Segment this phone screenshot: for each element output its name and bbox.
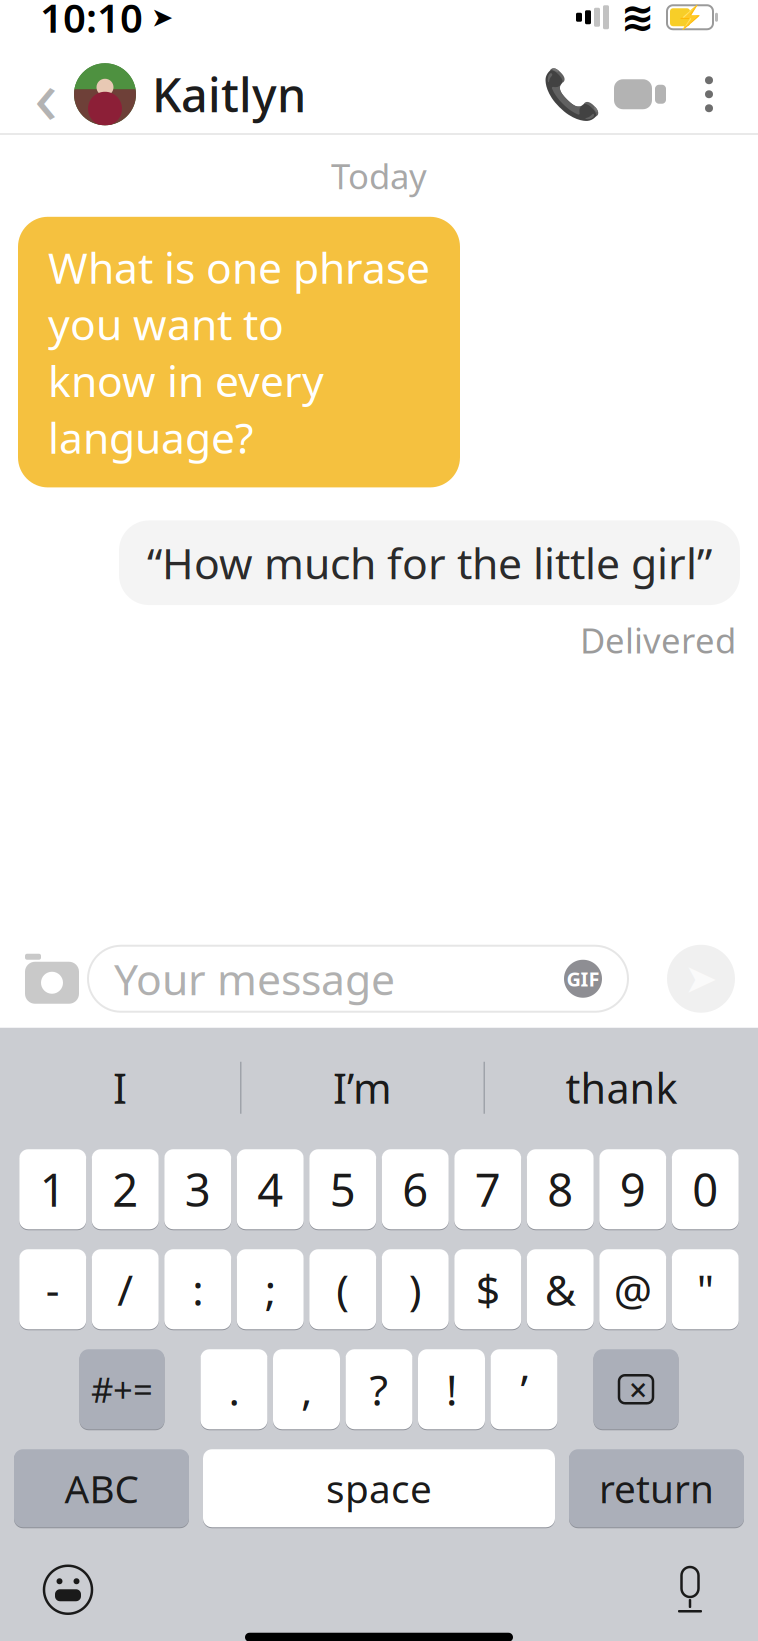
button[interactable]: , (273, 1348, 340, 1431)
staticText: 4 (257, 1159, 283, 1219)
staticText: ‹ (34, 43, 58, 146)
button[interactable]: 3 (164, 1148, 231, 1231)
staticText: What is one phrase you want to know in e… (48, 239, 430, 465)
button[interactable]: ? (345, 1348, 412, 1431)
button[interactable]: Dictation (650, 1555, 730, 1625)
button[interactable]: 4 (237, 1148, 304, 1231)
staticText: 📞 (542, 67, 602, 122)
staticText: × (629, 1368, 647, 1410)
staticText: ➤ (684, 956, 718, 1001)
button[interactable]: : (164, 1248, 231, 1331)
button[interactable]: Emoji (28, 1555, 108, 1625)
staticText: : (192, 1261, 203, 1318)
staticText: 3 (185, 1159, 211, 1219)
button[interactable]: #+= (79, 1348, 164, 1431)
staticText: thank (565, 1060, 677, 1115)
button[interactable]: space (203, 1448, 555, 1529)
staticText: Kaitlyn (152, 63, 306, 125)
staticText: return (599, 1463, 714, 1514)
button[interactable]: ( (309, 1248, 376, 1331)
staticText: " (697, 1261, 714, 1318)
button[interactable]: ! (418, 1348, 485, 1431)
button[interactable]: 0 (672, 1148, 739, 1231)
staticText: space (326, 1463, 432, 1514)
staticText: 2 (112, 1159, 138, 1219)
button[interactable]: 7 (454, 1148, 521, 1231)
staticText: ⚡ (676, 4, 704, 30)
button[interactable]: 5 (309, 1148, 376, 1231)
button[interactable]: ) (382, 1248, 449, 1331)
staticText: ≋ (621, 0, 655, 40)
staticText: ? (369, 1361, 388, 1418)
staticText: - (46, 1261, 60, 1318)
button[interactable]: thank (485, 1050, 758, 1126)
button[interactable]: Voice call (542, 62, 602, 126)
button[interactable]: Camera (16, 947, 88, 1011)
staticText: / (117, 1261, 133, 1318)
staticText: ) (409, 1261, 422, 1318)
staticText: ( (336, 1261, 349, 1318)
button[interactable]: Send (664, 942, 738, 1016)
staticText: 5 (330, 1159, 356, 1219)
staticText: 1 (40, 1159, 66, 1219)
button[interactable]: I’m (241, 1050, 483, 1126)
button[interactable]: return (569, 1448, 744, 1529)
button[interactable]: 9 (599, 1148, 666, 1231)
staticText: ’ (520, 1361, 527, 1418)
staticText: Your message (114, 950, 395, 1007)
staticText: GIF (566, 965, 599, 992)
staticText: $ (476, 1261, 500, 1318)
button[interactable]: $ (454, 1248, 521, 1331)
staticText: I’m (333, 1060, 392, 1115)
staticText: ; (265, 1261, 276, 1318)
button[interactable]: & (527, 1248, 594, 1331)
staticText: 10:10 (40, 0, 143, 44)
button[interactable]: . (200, 1348, 267, 1431)
button[interactable]: I (0, 1050, 240, 1126)
button[interactable]: ABC (14, 1448, 189, 1529)
staticText: & (545, 1261, 576, 1318)
staticText: 9 (620, 1159, 646, 1219)
staticText: Delivered (580, 617, 736, 663)
button[interactable]: Kaitlyn (74, 63, 306, 125)
staticText: Today (331, 153, 427, 199)
staticText: , (301, 1361, 312, 1418)
button[interactable]: / (92, 1248, 159, 1331)
staticText: . (228, 1361, 239, 1418)
button[interactable]: Back (18, 58, 74, 130)
button[interactable]: 1 (19, 1148, 86, 1231)
staticText: “How much for the little girl” (147, 534, 712, 591)
staticText: 8 (547, 1159, 573, 1219)
button[interactable]: Backspace (593, 1348, 678, 1431)
button[interactable]: 2 (92, 1148, 159, 1231)
staticText: I (113, 1060, 127, 1115)
button[interactable]: " (672, 1248, 739, 1331)
staticText: #+= (91, 1366, 153, 1412)
button[interactable]: Your message (88, 946, 628, 1012)
staticText: ➤ (151, 2, 173, 32)
button[interactable]: - (19, 1248, 86, 1331)
staticText: 6 (402, 1159, 428, 1219)
button[interactable]: 6 (382, 1148, 449, 1231)
button[interactable]: ; (237, 1248, 304, 1331)
staticText: ABC (64, 1463, 138, 1514)
button[interactable]: @ (599, 1248, 666, 1331)
button[interactable]: ’ (490, 1348, 557, 1431)
staticText: ! (446, 1361, 457, 1418)
staticText: @ (614, 1261, 652, 1318)
staticText: 0 (692, 1159, 718, 1219)
button[interactable]: 8 (527, 1148, 594, 1231)
button[interactable]: More options (678, 62, 740, 126)
button[interactable]: Video call (602, 62, 678, 126)
staticText: 7 (475, 1159, 501, 1219)
